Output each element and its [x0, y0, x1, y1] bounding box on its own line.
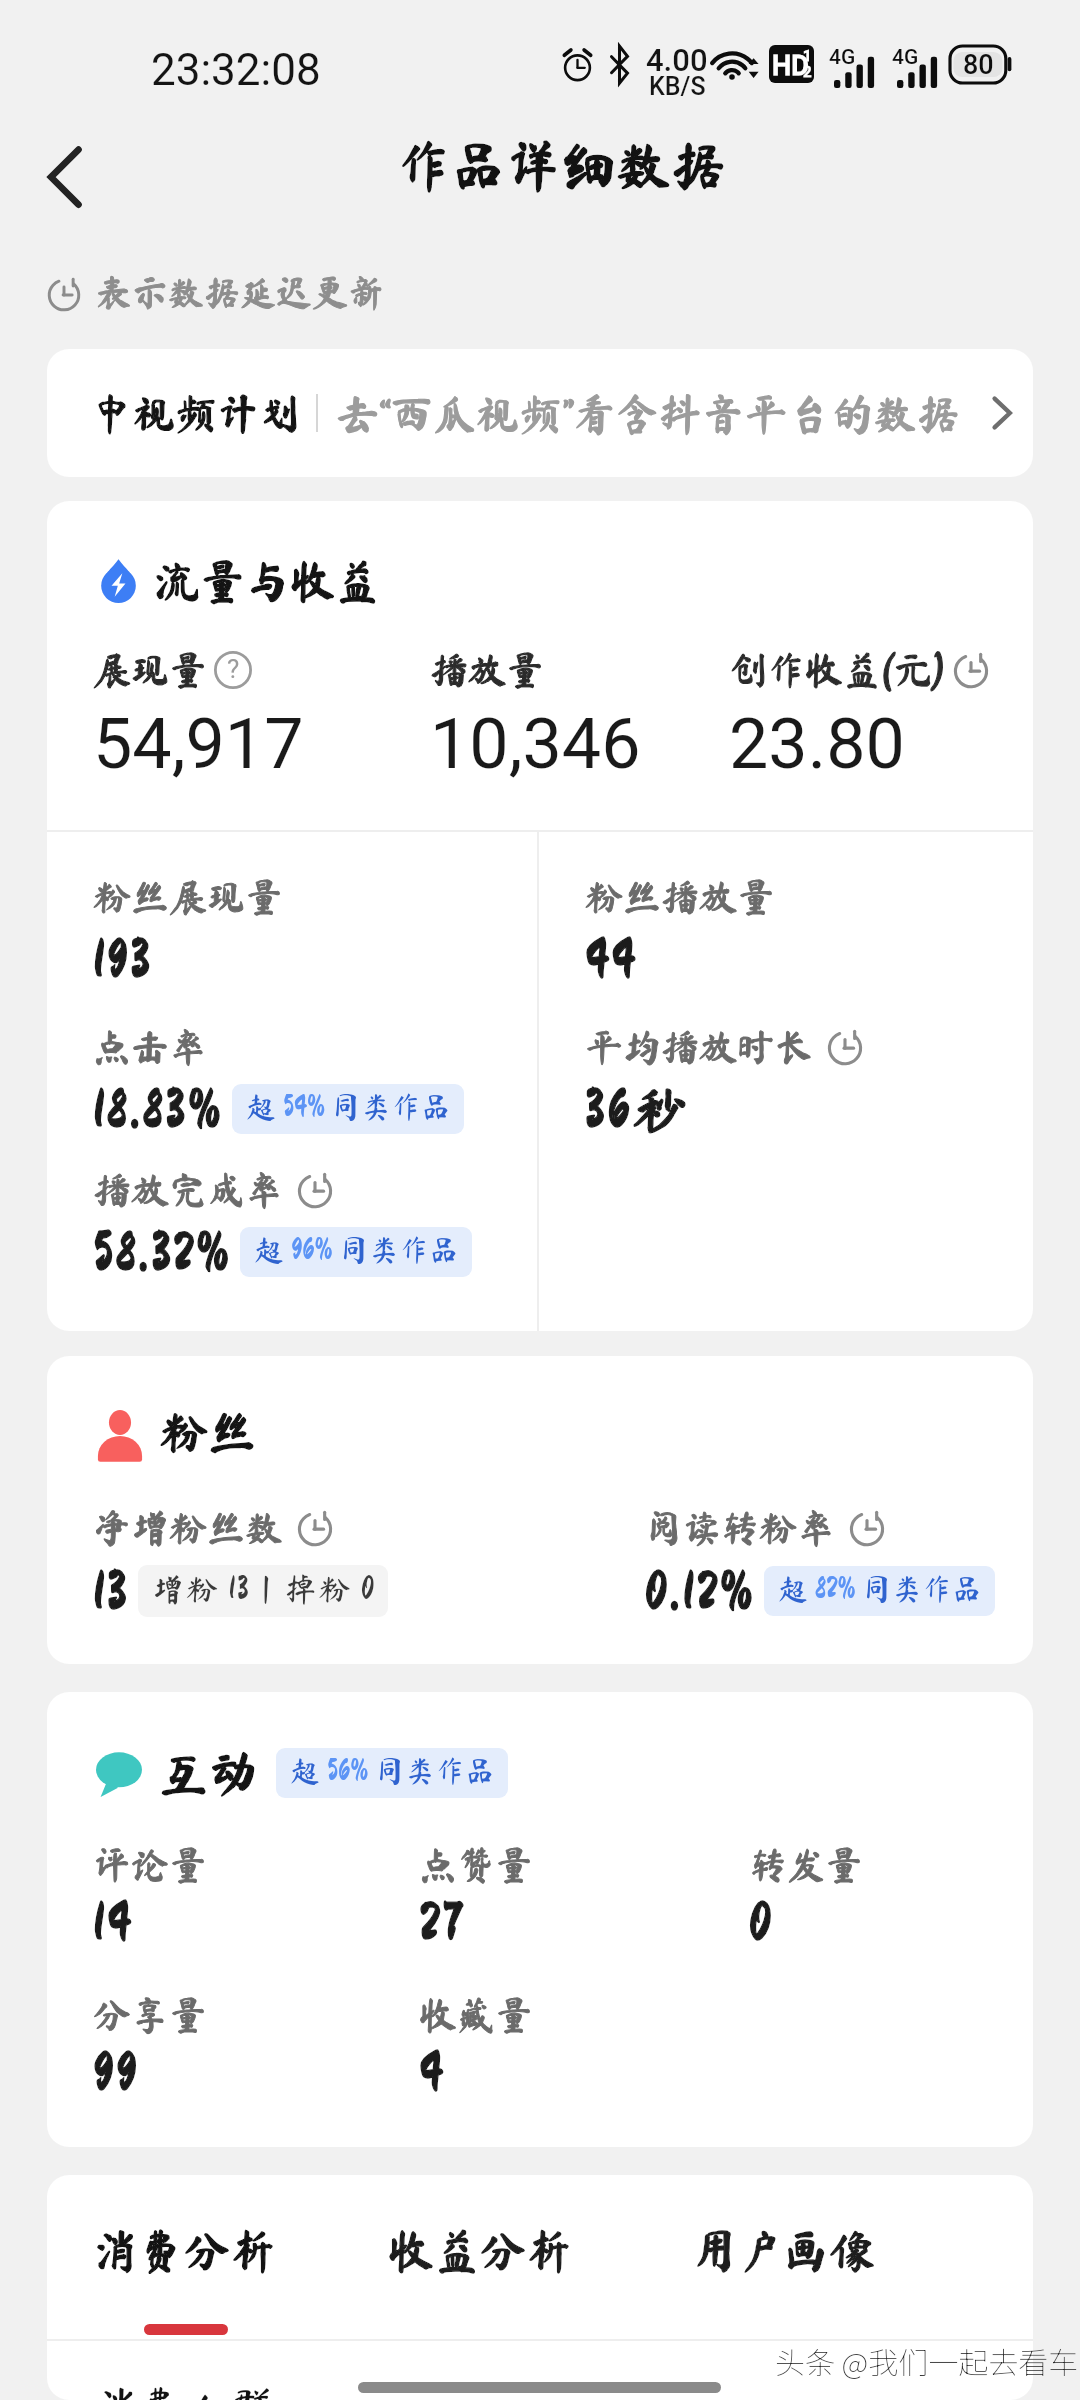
- button[interactable]: 收益分析: [359, 2183, 619, 2339]
- staticText: 平均播放时长: [585, 1028, 814, 1066]
- staticText: 193: [93, 932, 153, 986]
- staticText: 13: [93, 1564, 130, 1618]
- staticText: 0: [749, 1895, 774, 1949]
- staticText: 超: [246, 1092, 283, 1122]
- staticText: 4.00: [646, 42, 708, 78]
- staticText: 同类作品: [325, 1092, 452, 1122]
- button[interactable]: 转发量: [749, 1870, 1033, 1980]
- staticText: 27: [419, 1895, 465, 1949]
- staticText: 超: [290, 1756, 327, 1786]
- staticText: 平均播放时长: [585, 1028, 814, 1066]
- staticText: 流量与收益: [155, 558, 381, 603]
- button[interactable]: Back: [16, 122, 122, 228]
- staticText: 转发量: [749, 1846, 864, 1884]
- button[interactable]: 分享量: [93, 2020, 393, 2130]
- staticText: 收益分析: [388, 2228, 572, 2274]
- staticText: 中视频计划: [91, 392, 302, 434]
- staticText: 分享量: [93, 1996, 208, 2034]
- button[interactable]: 点击率: [93, 1051, 523, 1161]
- staticText: 去“西瓜视频”看含抖音平台的数据: [336, 392, 960, 435]
- staticText: 58.32%: [93, 1225, 232, 1279]
- staticText: 播放完成率: [93, 1171, 284, 1209]
- button[interactable]: 播放完成率: [93, 1194, 523, 1304]
- staticText: 0: [749, 1895, 774, 1949]
- staticText: 增粉 13丨掉粉 0: [152, 1573, 376, 1605]
- staticText: 收益分析: [388, 2228, 572, 2274]
- staticText: 2: [803, 63, 812, 81]
- staticText: 中视频计划: [91, 392, 302, 434]
- staticText: 36秒: [585, 1082, 690, 1136]
- staticText: 4G: [829, 45, 856, 70]
- button[interactable]: 粉丝播放量: [585, 901, 1015, 1011]
- staticText: 36秒: [585, 1082, 690, 1136]
- staticText: 4: [419, 2045, 446, 2099]
- staticText: 10,346: [430, 703, 641, 785]
- staticText: 评论量: [93, 1846, 208, 1884]
- staticText: 14: [93, 1895, 134, 1949]
- staticText: 点击率: [93, 1028, 208, 1066]
- staticText: 流量与收益: [155, 558, 381, 603]
- staticText: 粉丝展现量: [93, 878, 284, 916]
- staticText: 54%: [283, 1092, 325, 1122]
- staticText: 超: [254, 1235, 291, 1265]
- staticText: 44: [585, 932, 639, 986]
- staticText: 播放完成率: [93, 1171, 284, 1209]
- staticText: 58.32%: [93, 1225, 232, 1279]
- staticText: 超: [778, 1574, 815, 1604]
- staticText: 18.83%: [93, 1082, 224, 1136]
- staticText: 44: [585, 932, 639, 986]
- staticText: 消费分析: [92, 2228, 276, 2274]
- button[interactable]: 创作收益(元): [729, 677, 1019, 797]
- staticText: 作品详细数据: [396, 138, 727, 193]
- staticText: 同类作品: [369, 1756, 496, 1786]
- staticText: 23:32:08: [151, 44, 321, 96]
- staticText: 粉丝展现量: [93, 878, 284, 916]
- staticText: 分享量: [93, 1996, 208, 2034]
- button[interactable]: 用户画像: [662, 2183, 922, 2339]
- staticText: 阅读转粉率: [645, 1509, 836, 1547]
- staticText: 表示数据延迟更新: [96, 274, 385, 310]
- staticText: 23.80: [729, 703, 905, 785]
- staticText: 18.83%: [93, 1082, 224, 1136]
- staticText: 去“西瓜视频”看含抖音平台的数据: [336, 392, 960, 435]
- staticText: 82%: [815, 1574, 856, 1604]
- button[interactable]: 点赞量: [419, 1870, 719, 1980]
- button[interactable]: 展现量: [93, 677, 383, 797]
- staticText: 99: [93, 2045, 140, 2099]
- staticText: 粉丝播放量: [585, 878, 776, 916]
- button[interactable]: 中视频计划: [47, 349, 1033, 477]
- staticText: 表示数据延迟更新: [96, 274, 385, 310]
- staticText: 193: [93, 932, 153, 986]
- staticText: 收藏量: [419, 1996, 534, 2034]
- staticText: 80: [963, 49, 994, 81]
- button[interactable]: 播放量: [430, 677, 720, 797]
- staticText: 净增粉丝数: [93, 1509, 284, 1547]
- staticText: 粉丝: [160, 1408, 257, 1456]
- staticText: KB/S: [649, 72, 706, 101]
- staticText: 用户画像: [691, 2228, 875, 2274]
- staticText: 评论量: [93, 1846, 208, 1884]
- staticText: 13: [93, 1564, 130, 1618]
- button[interactable]: 粉丝展现量: [93, 901, 523, 1011]
- button[interactable]: 消费分析: [55, 2183, 315, 2339]
- staticText: 点赞量: [419, 1846, 534, 1884]
- staticText: 1: [803, 47, 812, 65]
- staticText: HD: [772, 50, 809, 82]
- staticText: 54,917: [93, 703, 304, 785]
- staticText: 点赞量: [419, 1846, 534, 1884]
- staticText: ?: [227, 654, 240, 684]
- staticText: 56%: [327, 1756, 369, 1786]
- staticText: 27: [419, 1895, 465, 1949]
- button[interactable]: 平均播放时长: [585, 1051, 1015, 1161]
- staticText: 展现量: [93, 651, 208, 689]
- staticText: 转发量: [749, 1846, 864, 1884]
- staticText: 粉丝播放量: [585, 878, 776, 916]
- button[interactable]: 评论量: [93, 1870, 393, 1980]
- button[interactable]: 收藏量: [419, 2020, 719, 2130]
- staticText: 同类作品: [856, 1574, 983, 1604]
- staticText: 消费人群: [92, 2385, 276, 2400]
- staticText: 创作收益(元): [729, 651, 946, 689]
- staticText: 4G: [892, 45, 919, 70]
- staticText: 0.12%: [645, 1564, 756, 1618]
- staticText: 创作收益(元): [729, 651, 946, 689]
